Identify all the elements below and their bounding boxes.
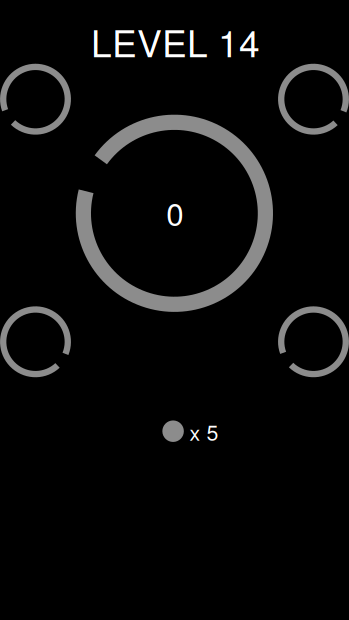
staticText: x 5 (189, 416, 218, 447)
staticText: 0 (166, 190, 183, 235)
button[interactable]: Bottom right gate (278, 306, 349, 377)
button[interactable]: Top left gate (0, 64, 71, 135)
staticText: LEVEL 14 (91, 15, 260, 68)
button[interactable]: Score 0 (75, 114, 273, 312)
button[interactable]: Top right gate (278, 64, 349, 135)
button[interactable]: Bottom left gate (0, 306, 71, 377)
